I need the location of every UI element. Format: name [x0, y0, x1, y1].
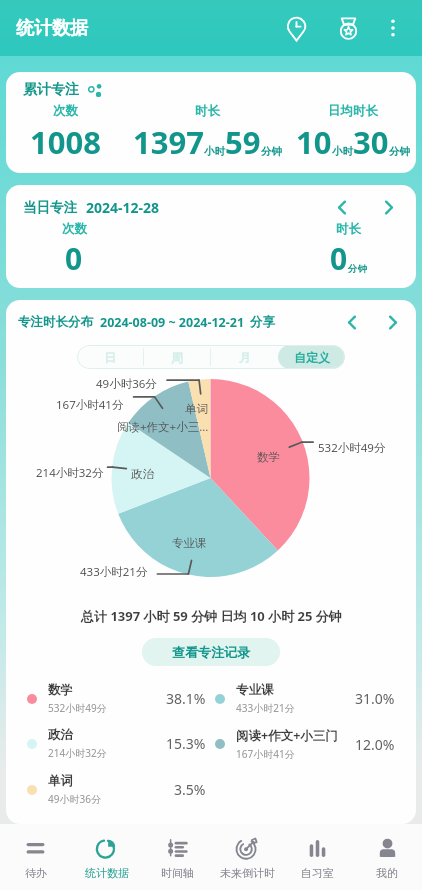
staticText: 214小时32分: [36, 465, 104, 481]
staticText: 分钟: [261, 145, 282, 158]
staticText: 专注时长分布: [18, 314, 93, 330]
staticText: 日均时长: [328, 103, 378, 119]
staticText: 时长: [195, 103, 220, 119]
staticText: 单词: [185, 402, 208, 416]
staticText: 59: [225, 121, 261, 163]
staticText: 分钟: [348, 263, 367, 275]
button[interactable]: 阅读+作文+小三门: [215, 727, 404, 761]
staticText: 月: [239, 350, 251, 365]
staticText: 12.0%: [355, 735, 395, 754]
staticText: 分享: [250, 314, 275, 330]
button[interactable]: 未来倒计时: [212, 824, 282, 890]
staticText: 我的: [376, 866, 398, 880]
staticText: 当日专注: [23, 199, 77, 216]
staticText: 次数: [53, 103, 78, 119]
staticText: 433小时21分: [80, 564, 148, 580]
staticText: 0: [330, 238, 348, 279]
staticText: 0: [65, 238, 83, 279]
staticText: 分钟: [389, 145, 410, 158]
staticText: 周: [171, 350, 183, 365]
button[interactable]: 我的: [352, 824, 422, 890]
staticText: 2024-12-28: [86, 198, 160, 217]
staticText: 3.5%: [174, 780, 206, 799]
staticText: 数学: [48, 682, 73, 698]
button[interactable]: 政治: [27, 727, 215, 760]
button[interactable]: 时间轴: [142, 824, 212, 890]
button[interactable]: 分享: [250, 314, 275, 330]
staticText: 未来倒计时: [220, 866, 275, 880]
button[interactable]: 统计数据: [71, 824, 142, 890]
button[interactable]: 月: [211, 345, 278, 369]
staticText: 政治: [48, 727, 73, 743]
button[interactable]: Next day: [374, 193, 402, 221]
button[interactable]: 专业课: [215, 682, 404, 715]
staticText: 时间轴: [161, 866, 194, 880]
staticText: 查看专注记录: [172, 644, 250, 660]
staticText: 专业课: [172, 536, 207, 550]
staticText: 30: [353, 121, 389, 163]
button[interactable]: Next period: [378, 308, 406, 336]
button[interactable]: 单词: [27, 773, 215, 806]
staticText: 阅读+作文+小三门: [236, 727, 338, 744]
staticText: 待办: [25, 866, 47, 880]
staticText: 小时: [332, 145, 353, 158]
button[interactable]: 自习室: [282, 824, 352, 890]
staticText: 532小时49分: [48, 701, 107, 715]
button[interactable]: History: [274, 6, 318, 50]
staticText: 214小时32分: [48, 746, 107, 760]
staticText: 49小时36分: [96, 376, 157, 392]
staticText: 10: [296, 121, 332, 163]
staticText: 1397: [133, 121, 204, 163]
button[interactable]: Achievements: [326, 6, 370, 50]
staticText: 总计 1397 小时 59 分钟 日均 10 小时 25 分钟: [81, 607, 342, 625]
button[interactable]: 数学: [27, 682, 215, 715]
staticText: 阅读+作文+小三...: [117, 419, 209, 435]
staticText: 自习室: [301, 866, 334, 880]
staticText: 31.0%: [355, 689, 395, 708]
staticText: 日: [104, 350, 116, 365]
staticText: 167小时41分: [56, 397, 124, 413]
staticText: 数学: [257, 450, 280, 464]
button[interactable]: 待办: [0, 824, 71, 890]
staticText: 49小时36分: [48, 792, 101, 806]
staticText: 统计数据: [16, 17, 88, 40]
button[interactable]: 自定义: [278, 345, 345, 369]
staticText: 次数: [62, 221, 87, 237]
button[interactable]: 周: [144, 345, 210, 369]
staticText: 统计数据: [85, 866, 129, 880]
staticText: 433小时21分: [236, 701, 295, 715]
button[interactable]: 日: [77, 345, 143, 369]
staticText: 时长: [336, 221, 361, 237]
staticText: 167小时41分: [236, 747, 295, 761]
staticText: 2024-08-09 ~ 2024-12-21: [100, 314, 245, 331]
button[interactable]: More options: [373, 8, 413, 48]
staticText: 小时: [204, 145, 225, 158]
staticText: 1008: [30, 121, 101, 163]
button[interactable]: Previous period: [338, 308, 366, 336]
button[interactable]: 查看专注记录: [142, 638, 280, 666]
staticText: 自定义: [294, 350, 330, 365]
staticText: 专业课: [236, 682, 274, 698]
staticText: 政治: [131, 467, 154, 481]
staticText: 累计专注: [23, 81, 79, 99]
button[interactable]: Previous day: [328, 193, 356, 221]
staticText: 38.1%: [166, 689, 206, 708]
staticText: 532小时49分: [318, 440, 386, 456]
staticText: 15.3%: [166, 734, 206, 753]
staticText: 单词: [48, 773, 73, 789]
